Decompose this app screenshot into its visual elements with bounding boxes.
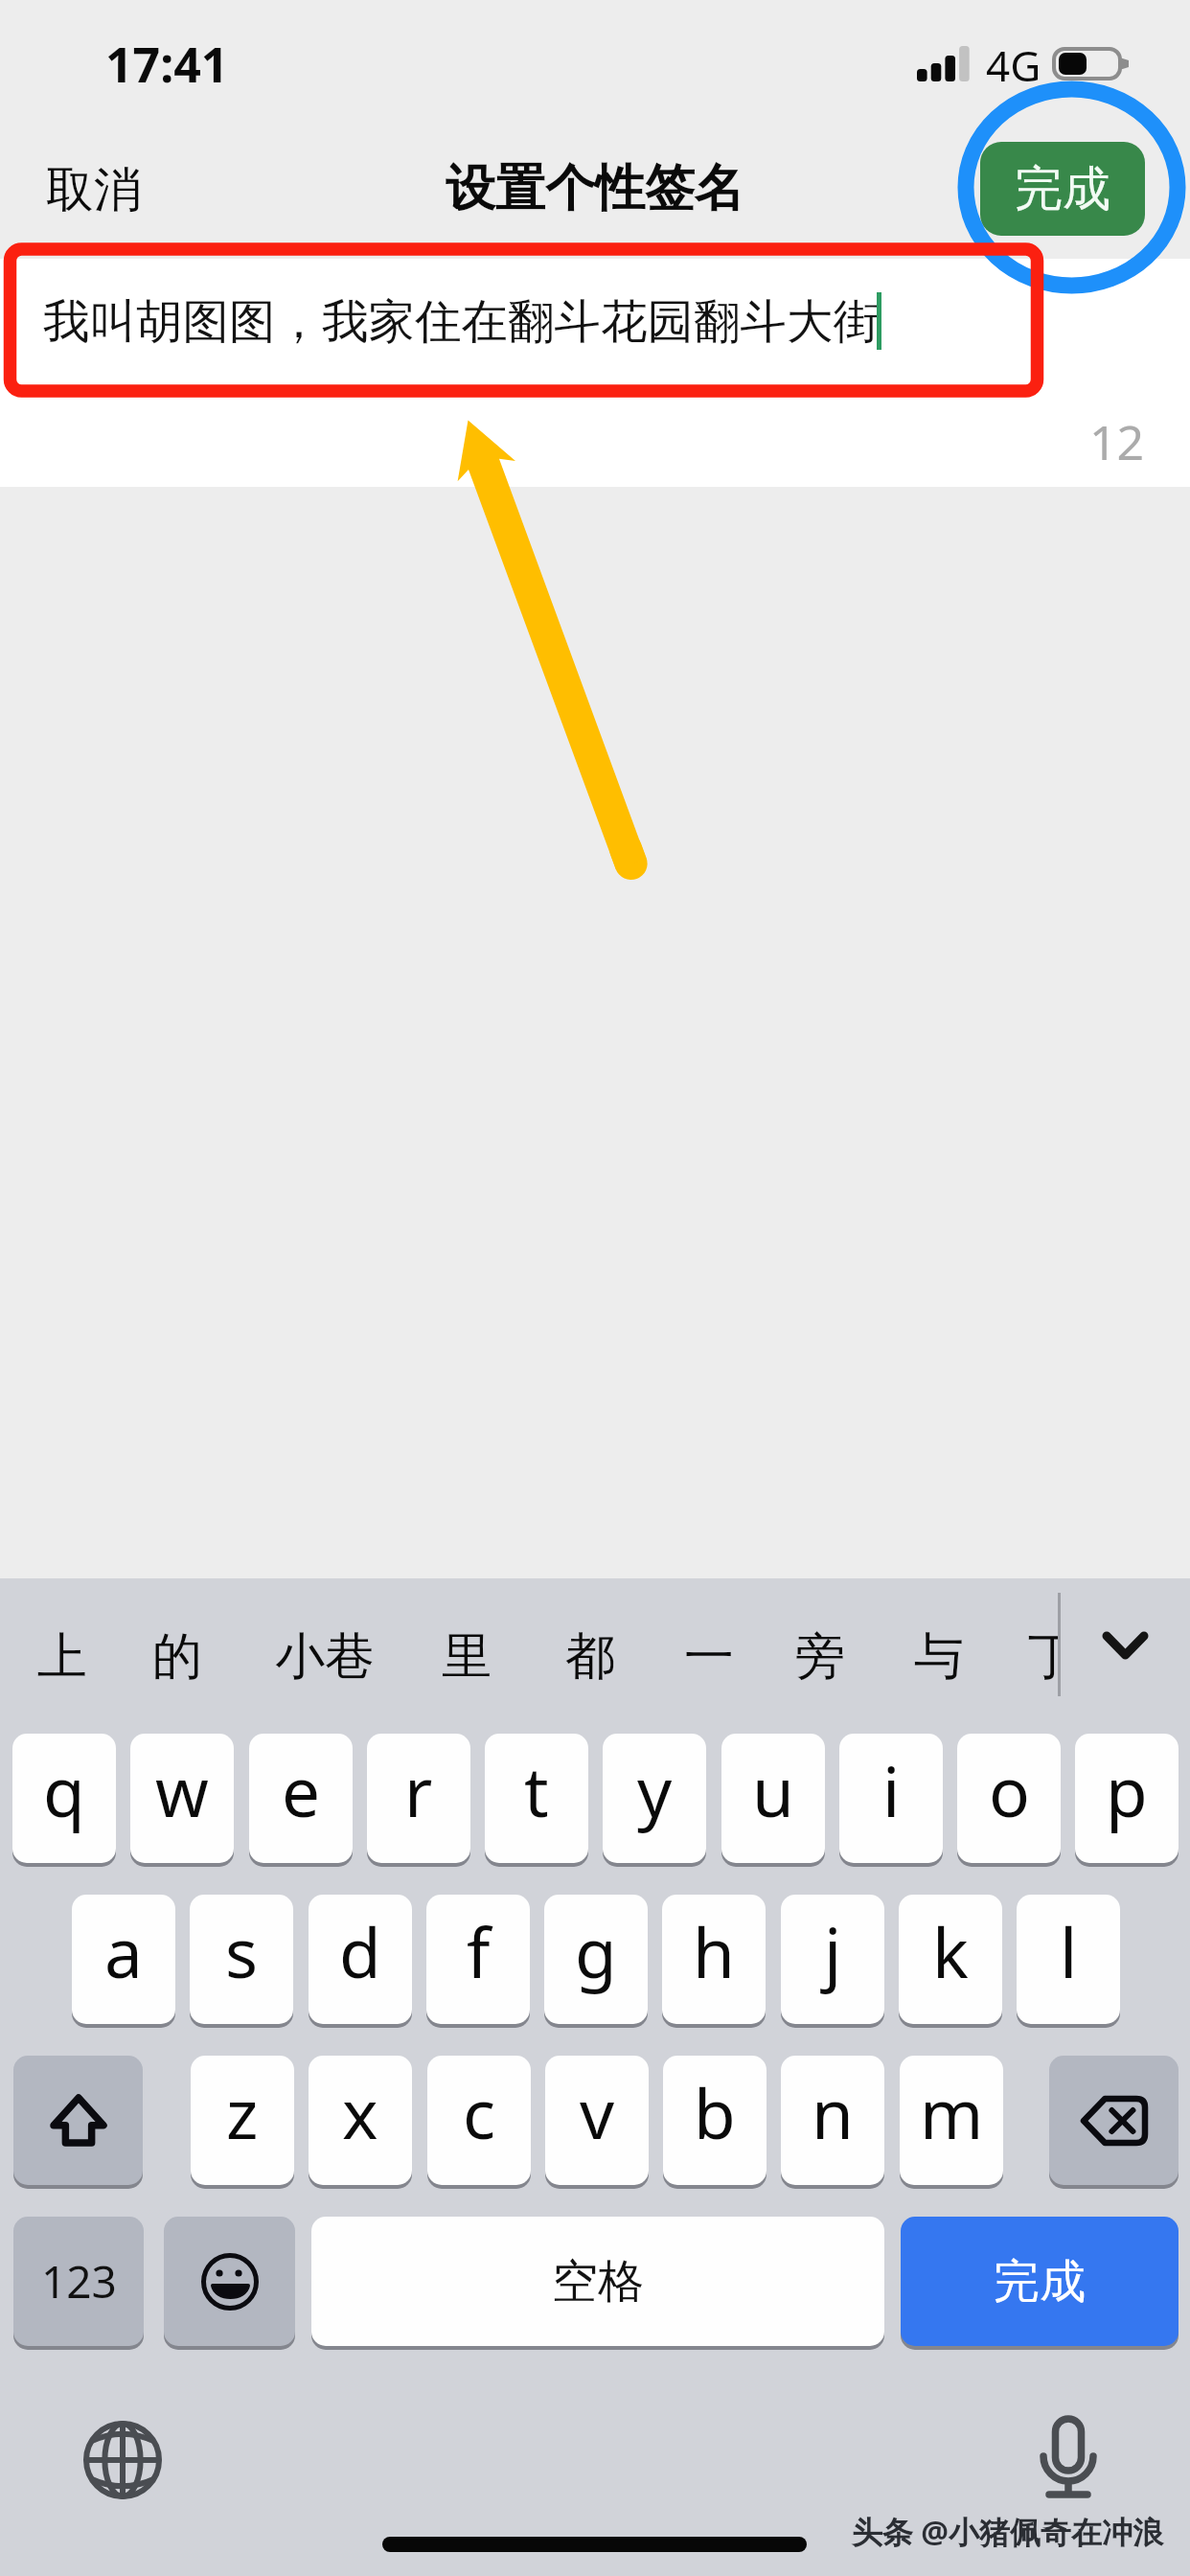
button[interactable]: Voice input <box>1024 2413 1112 2501</box>
staticText: j <box>824 1905 842 1998</box>
button[interactable]: 旁 <box>772 1588 868 1726</box>
button[interactable]: 一 <box>661 1588 757 1726</box>
staticText: r <box>404 1744 433 1837</box>
staticText: 4G <box>986 36 1041 94</box>
button[interactable]: l <box>1017 1895 1120 2024</box>
staticText: f <box>467 1905 491 1998</box>
staticText: 里 <box>442 1625 492 1689</box>
button[interactable]: 的 <box>129 1588 225 1726</box>
staticText: 我叫胡图图，我家住在翻斗花园翻斗大街 <box>43 292 880 351</box>
staticText: b <box>694 2066 736 2159</box>
staticText: 丁 <box>1028 1625 1059 1689</box>
staticText: 上 <box>37 1625 87 1689</box>
staticText: 取消 <box>46 160 142 220</box>
button[interactable]: r <box>367 1734 470 1863</box>
staticText: 的 <box>152 1625 202 1689</box>
staticText: a <box>104 1905 143 1998</box>
staticText: 都 <box>565 1625 615 1689</box>
button[interactable]: c <box>427 2056 531 2185</box>
staticText: 设置个性签名 <box>446 157 744 220</box>
button[interactable]: i <box>839 1734 943 1863</box>
staticText: 一 <box>684 1625 734 1689</box>
button[interactable]: t <box>485 1734 588 1863</box>
button[interactable]: y <box>603 1734 706 1863</box>
button[interactable]: d <box>309 1895 412 2024</box>
staticText: 空格 <box>552 2253 644 2311</box>
button[interactable]: 123 <box>13 2217 144 2346</box>
staticText: h <box>693 1905 735 1998</box>
staticText: o <box>989 1744 1030 1837</box>
button[interactable]: q <box>12 1734 116 1863</box>
staticText: w <box>155 1744 209 1837</box>
button[interactable]: v <box>545 2056 649 2185</box>
staticText: e <box>282 1744 321 1837</box>
staticText: 小巷 <box>275 1625 375 1689</box>
button[interactable]: Change keyboard <box>80 2417 166 2503</box>
button[interactable]: Emoji <box>164 2217 295 2346</box>
button[interactable]: Backspace <box>1049 2056 1179 2185</box>
button[interactable]: n <box>781 2056 884 2185</box>
button[interactable]: 里 <box>419 1588 515 1726</box>
button[interactable]: g <box>544 1895 648 2024</box>
staticText: n <box>812 2066 854 2159</box>
button[interactable]: 与 <box>891 1588 987 1726</box>
button[interactable]: x <box>309 2056 412 2185</box>
button[interactable]: 都 <box>542 1588 638 1726</box>
button[interactable]: a <box>72 1895 175 2024</box>
button[interactable]: z <box>191 2056 294 2185</box>
button[interactable]: b <box>663 2056 767 2185</box>
button[interactable]: Hide keyboard <box>1087 1599 1163 1691</box>
staticText: c <box>463 2066 496 2159</box>
button[interactable]: 小巷 <box>263 1588 387 1726</box>
button[interactable]: 上 <box>14 1588 110 1726</box>
button[interactable]: 完成 <box>901 2217 1179 2346</box>
staticText: g <box>575 1905 617 1998</box>
staticText: 17:41 <box>105 32 229 97</box>
staticText: q <box>43 1744 85 1837</box>
staticText: t <box>524 1744 549 1837</box>
staticText: y <box>637 1744 673 1837</box>
button[interactable]: h <box>662 1895 766 2024</box>
staticText: 旁 <box>795 1625 845 1689</box>
staticText: 与 <box>914 1625 964 1689</box>
button[interactable]: Shift <box>13 2056 143 2185</box>
button[interactable]: 取消 <box>21 144 167 236</box>
staticText: k <box>932 1905 969 1998</box>
staticText: z <box>226 2066 259 2159</box>
staticText: p <box>1106 1744 1148 1837</box>
staticText: s <box>225 1905 259 1998</box>
staticText: 头条 @小猪佩奇在冲浪 <box>852 2511 1164 2553</box>
staticText: d <box>339 1905 381 1998</box>
button[interactable]: m <box>900 2056 1003 2185</box>
button[interactable]: 完成 <box>980 142 1145 236</box>
button[interactable]: p <box>1075 1734 1179 1863</box>
button[interactable]: k <box>899 1895 1002 2024</box>
button[interactable]: 空格 <box>311 2217 884 2346</box>
button[interactable]: o <box>957 1734 1061 1863</box>
staticText: 完成 <box>994 2253 1086 2311</box>
button[interactable]: f <box>426 1895 530 2024</box>
button[interactable]: e <box>249 1734 353 1863</box>
staticText: x <box>342 2066 378 2159</box>
staticText: i <box>882 1744 901 1837</box>
staticText: 123 <box>41 2251 117 2311</box>
staticText: 12 <box>1089 409 1145 474</box>
button[interactable]: s <box>190 1895 293 2024</box>
button[interactable]: w <box>130 1734 234 1863</box>
button[interactable]: u <box>721 1734 825 1863</box>
staticText: u <box>752 1744 794 1837</box>
staticText: m <box>920 2066 984 2159</box>
staticText: 完成 <box>1015 159 1110 219</box>
staticText: v <box>580 2066 615 2159</box>
staticText: l <box>1060 1905 1078 1998</box>
button[interactable]: j <box>781 1895 884 2024</box>
